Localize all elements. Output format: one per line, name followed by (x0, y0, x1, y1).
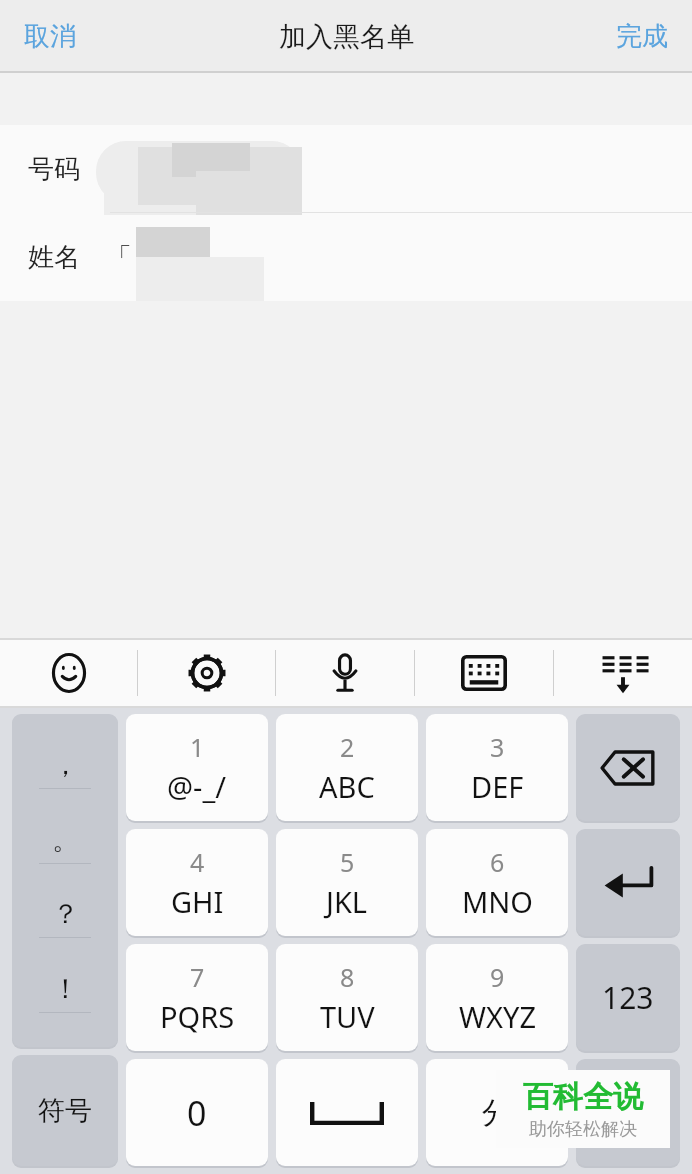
button[interactable] (576, 829, 680, 936)
button[interactable]: 号码 (0, 125, 692, 213)
button[interactable]: 7 (126, 944, 268, 1051)
staticText: PQRS (160, 997, 235, 1036)
button[interactable]: 123 (576, 944, 680, 1051)
button[interactable] (576, 714, 680, 821)
staticText: 123 (602, 977, 654, 1018)
button[interactable]: Settings (138, 640, 275, 706)
button[interactable]: Keyboard layout (415, 640, 553, 706)
button[interactable]: 1 (126, 714, 268, 821)
staticText: 符号 (38, 1094, 92, 1128)
other: Punctuation (12, 714, 118, 1047)
button[interactable]: 0 (126, 1059, 268, 1166)
staticText: 号码 (28, 153, 80, 186)
staticText: 助你轻松解决 (529, 1118, 637, 1141)
button[interactable]: 4 (126, 829, 268, 936)
staticText: ， (52, 748, 79, 782)
button[interactable]: 9 (426, 944, 568, 1051)
staticText: 加入黑名单 (279, 20, 414, 54)
staticText: 5 (340, 845, 355, 879)
staticText: ʻ35 (102, 152, 252, 187)
staticText: GHI (171, 882, 224, 921)
staticText: @-_/ (167, 767, 227, 806)
button[interactable]: 符号 (12, 1055, 118, 1166)
button[interactable]: 分 (426, 1059, 568, 1166)
staticText: 取消 (24, 20, 76, 53)
staticText: 3 (490, 730, 505, 764)
staticText: 4 (190, 845, 205, 879)
button[interactable]: Emoji (0, 640, 137, 706)
staticText: 2 (340, 730, 355, 764)
staticText: 8 (340, 960, 355, 994)
button[interactable]: 3 (426, 714, 568, 821)
staticText: 「 (106, 241, 132, 274)
button[interactable]: 取消 (14, 12, 86, 61)
staticText: ABC (319, 767, 375, 806)
button[interactable]: 6 (426, 829, 568, 936)
button[interactable]: Voice input (276, 640, 414, 706)
staticText: 百科全说 (523, 1078, 643, 1116)
staticText: 姓名 (28, 241, 80, 274)
button[interactable]: 8 (276, 944, 418, 1051)
staticText: TUV (320, 997, 375, 1036)
staticText: 7 (190, 960, 205, 994)
button[interactable] (576, 1059, 680, 1166)
staticText: ！ (52, 972, 79, 1006)
button[interactable]: 5 (276, 829, 418, 936)
staticText: JKL (326, 882, 368, 921)
other: Enter (576, 829, 680, 936)
staticText: 1 (190, 730, 205, 764)
button[interactable] (276, 1059, 418, 1166)
staticText: 。 (52, 823, 79, 857)
button[interactable]: 完成 (606, 12, 678, 61)
staticText: 6 (490, 845, 505, 879)
button[interactable]: 姓名 (0, 213, 692, 301)
staticText: 分 (482, 1094, 512, 1132)
staticText: WXYZ (459, 997, 536, 1036)
staticText: MNO (462, 882, 533, 921)
button[interactable]: ， (12, 714, 118, 1047)
other: Space (276, 1059, 418, 1166)
button[interactable]: Hide keyboard (554, 640, 692, 706)
staticText: ？ (52, 897, 79, 931)
staticText: 9 (490, 960, 505, 994)
button[interactable]: 2 (276, 714, 418, 821)
staticText: 0 (187, 1090, 207, 1136)
other: Delete (576, 714, 680, 821)
staticText: 完成 (616, 20, 668, 53)
staticText: DEF (471, 767, 524, 806)
